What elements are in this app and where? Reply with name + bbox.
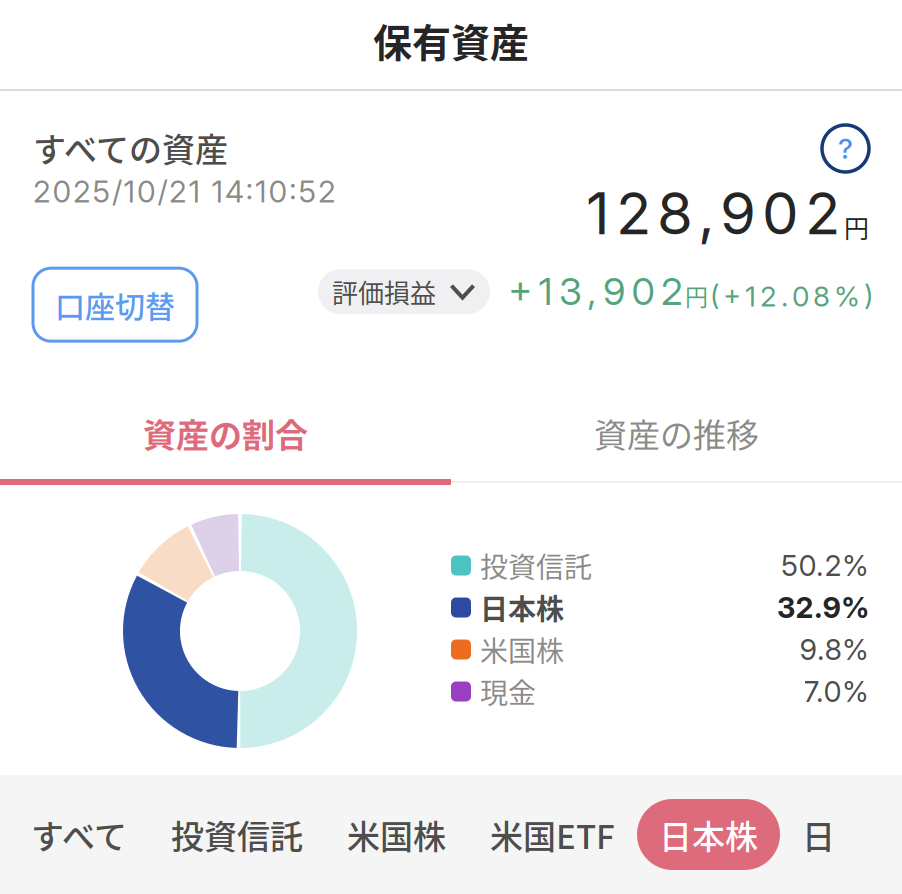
staticText: 32.9% xyxy=(777,590,869,625)
staticText: 現金 xyxy=(480,671,536,712)
staticText: 資産の推移 xyxy=(594,409,759,457)
button[interactable]: 投資信託 xyxy=(149,799,325,870)
button[interactable]: 資産の割合 xyxy=(0,408,451,458)
staticText: 50.2% xyxy=(781,548,869,583)
staticText: 2025/10/21 14:10:52 xyxy=(33,173,336,210)
button[interactable]: 口座切替 xyxy=(33,268,197,341)
staticText: 保有資産 xyxy=(373,12,529,68)
staticText: すべての資産 xyxy=(33,124,228,171)
staticText: (+12.08%) xyxy=(710,279,873,313)
staticText: 資産の割合 xyxy=(143,409,308,457)
staticText: 口座切替 xyxy=(55,283,175,326)
button[interactable]: ヘルプ xyxy=(822,125,869,172)
staticText: 日 xyxy=(802,811,835,858)
staticText: 評価損益 xyxy=(332,273,436,310)
staticText: 米国ETF xyxy=(490,811,615,858)
staticText: 日本株 xyxy=(480,587,564,628)
staticText: 投資信託 xyxy=(480,545,592,586)
button[interactable]: 米国株 xyxy=(325,799,468,870)
staticText: 7.0% xyxy=(803,674,869,709)
staticText: 128,902 xyxy=(586,178,840,248)
staticText: 日本株 xyxy=(659,811,758,858)
staticText: 円 xyxy=(685,279,708,312)
staticText: +13,902 xyxy=(508,268,683,314)
button[interactable]: 日 xyxy=(780,799,857,870)
button[interactable]: 評価損益 xyxy=(318,269,490,314)
button[interactable]: すべて xyxy=(9,799,149,870)
button[interactable]: 日本株 xyxy=(637,799,780,870)
button[interactable]: 資産の推移 xyxy=(451,408,902,458)
staticText: 円 xyxy=(844,209,869,245)
staticText: 米国株 xyxy=(480,629,564,670)
staticText: ? xyxy=(838,132,853,165)
staticText: 9.8% xyxy=(799,632,869,667)
staticText: 投資信託 xyxy=(171,811,303,858)
staticText: 米国株 xyxy=(347,811,446,858)
staticText: すべて xyxy=(31,811,127,858)
button[interactable]: 米国ETF xyxy=(468,799,637,870)
